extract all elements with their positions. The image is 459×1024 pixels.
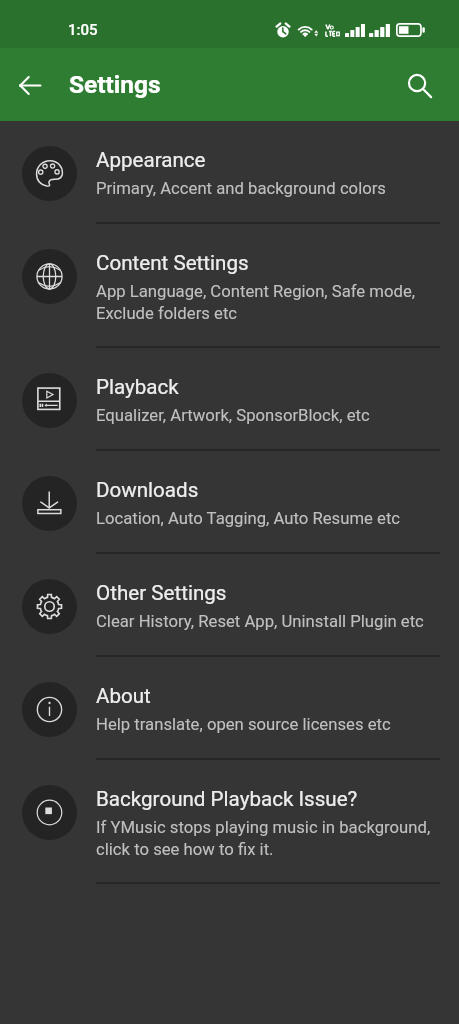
staticText: About <box>96 684 151 708</box>
button[interactable]: Back <box>6 61 54 109</box>
staticText: If YMusic stops playing music in backgro… <box>96 818 431 859</box>
staticText: Background Playback Issue? <box>96 787 358 811</box>
staticText: Clear History, Reset App, Uninstall Plug… <box>96 612 424 632</box>
staticText: Appearance <box>96 148 206 172</box>
button[interactable]: Playback <box>0 348 459 451</box>
button[interactable]: Background Playback Issue? <box>0 760 459 884</box>
staticText: Primary, Accent and background colors <box>96 179 386 199</box>
button[interactable]: Appearance <box>0 121 459 224</box>
staticText: Content Settings <box>96 251 249 275</box>
button[interactable]: Downloads <box>0 451 459 554</box>
staticText: Location, Auto Tagging, Auto Resume etc <box>96 509 401 529</box>
staticText: 1:05 <box>68 21 98 39</box>
button[interactable]: Other Settings <box>0 554 459 657</box>
button[interactable]: About <box>0 657 459 760</box>
staticText: Downloads <box>96 478 199 502</box>
button[interactable]: Content Settings <box>0 224 459 348</box>
button[interactable]: Search <box>395 61 443 109</box>
staticText: App Language, Content Region, Safe mode,… <box>96 282 416 323</box>
staticText: Equalizer, Artwork, SponsorBlock, etc <box>96 406 370 426</box>
staticText: Help translate, open source licenses etc <box>96 715 391 735</box>
staticText: Other Settings <box>96 581 227 605</box>
staticText: Playback <box>96 375 179 399</box>
staticText: Settings <box>69 70 161 99</box>
